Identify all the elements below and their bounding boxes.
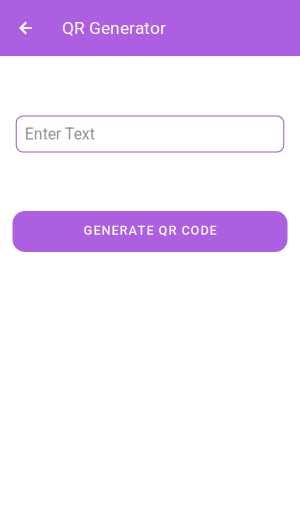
staticText: GENERATE QR CODE (83, 223, 216, 238)
button[interactable]: Enter Text (0, 116, 300, 152)
staticText: Enter Text (25, 125, 95, 143)
button[interactable]: Back (0, 0, 44, 56)
staticText: QR Generator (62, 18, 166, 38)
button[interactable]: GENERATE QR CODE (0, 211, 300, 252)
